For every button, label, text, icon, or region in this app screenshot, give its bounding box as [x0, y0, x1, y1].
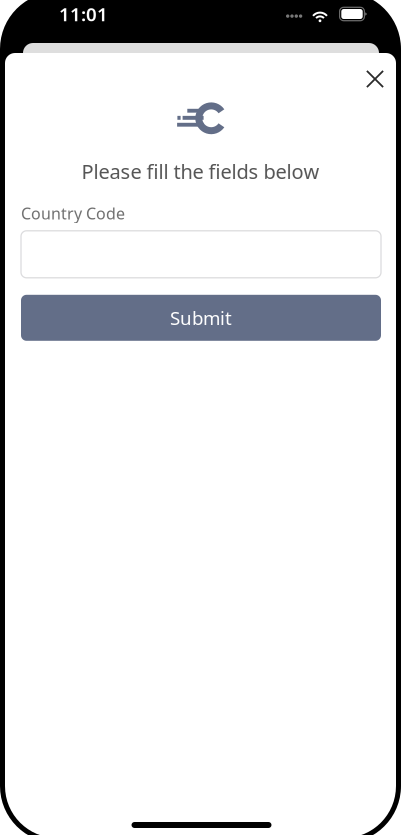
staticText: 11:01 [59, 2, 108, 26]
staticText: Submit [170, 305, 232, 330]
button[interactable]: Close [357, 61, 393, 97]
staticText: Please fill the fields below [81, 158, 319, 185]
staticText: Country Code [21, 203, 125, 224]
button[interactable]: Submit [21, 295, 381, 341]
